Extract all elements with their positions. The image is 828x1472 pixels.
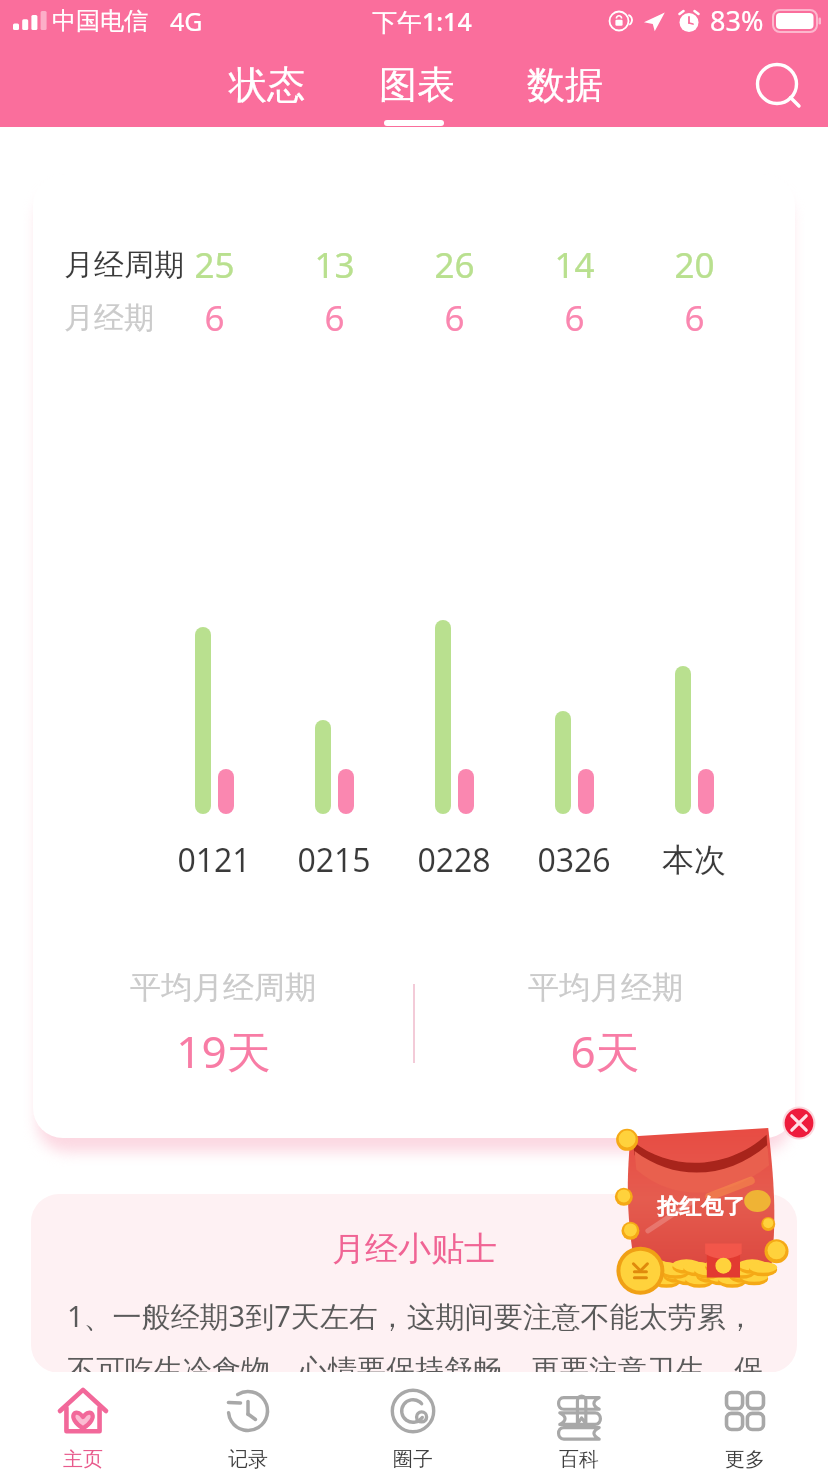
button[interactable]: 图表 <box>365 48 469 127</box>
staticText: 6 <box>324 294 345 342</box>
button[interactable]: 状态 <box>215 48 319 127</box>
staticText: 6 <box>684 294 705 342</box>
staticText: 月经小贴士 <box>332 1228 497 1270</box>
staticText: 13 <box>314 241 355 289</box>
staticText: 6 <box>564 294 585 342</box>
button[interactable]: 更多 <box>662 1372 828 1472</box>
staticText: 本次 <box>662 840 726 880</box>
staticText: 0121 <box>177 838 251 882</box>
button[interactable]: 记录 <box>165 1372 330 1472</box>
staticText: 抢红包了 <box>657 1193 745 1221</box>
button[interactable]: 数据 <box>513 48 617 127</box>
staticText: 1、一般经期3到7天左右，这期间要注意不能太劳累，不可吃生冷食物，心情要保持舒畅… <box>67 1296 767 1388</box>
staticText: 记录 <box>228 1447 268 1472</box>
staticText: 26 <box>434 241 475 289</box>
staticText: 主页 <box>63 1447 103 1472</box>
staticText: 4G <box>170 4 203 38</box>
staticText: 月经期 <box>64 299 154 337</box>
button[interactable]: Search <box>732 39 828 135</box>
staticText: 中国电信 <box>52 6 148 36</box>
button[interactable]: 主页 <box>0 1372 165 1472</box>
staticText: 14 <box>554 241 595 289</box>
staticText: 0215 <box>297 838 371 882</box>
button[interactable]: 圈子 <box>330 1372 496 1472</box>
staticText: 0326 <box>537 838 611 882</box>
staticText: 83% <box>710 2 764 39</box>
staticText: 数据 <box>527 61 603 109</box>
staticText: 平均月经期 <box>528 968 683 1007</box>
button[interactable]: Open red packet <box>618 1122 784 1292</box>
staticText: 圈子 <box>393 1447 433 1472</box>
staticText: 20 <box>674 241 715 289</box>
staticText: 平均月经周期 <box>130 968 316 1007</box>
staticText: 状态 <box>229 61 305 109</box>
button[interactable]: 百科 <box>496 1372 662 1472</box>
staticText: 6 <box>444 294 465 342</box>
staticText: 6天 <box>570 1021 640 1081</box>
staticText: 0228 <box>417 838 491 882</box>
staticText: 下午1:14 <box>372 4 472 38</box>
staticText: 月经周期 <box>64 246 184 284</box>
staticText: 图表 <box>379 61 455 109</box>
staticText: 6 <box>204 294 225 342</box>
staticText: 25 <box>194 241 235 289</box>
staticText: 百科 <box>559 1447 599 1472</box>
button[interactable]: Close <box>769 1093 828 1153</box>
staticText: 更多 <box>725 1447 765 1472</box>
staticText: 19天 <box>176 1021 271 1081</box>
